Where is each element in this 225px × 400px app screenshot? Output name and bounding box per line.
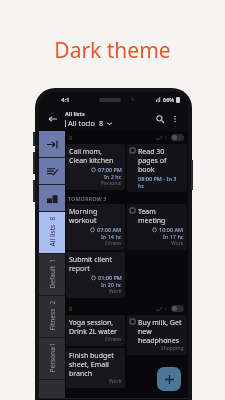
staticText: Dark theme bbox=[54, 36, 171, 65]
staticText: Fitness bbox=[47, 308, 56, 330]
button[interactable]: More options bbox=[168, 112, 182, 126]
button[interactable]: All lists bbox=[39, 212, 65, 254]
button[interactable]: Finish budget sheet, Email branch bbox=[66, 348, 125, 388]
staticText: Yoga session, Drink 2L water bbox=[69, 318, 122, 336]
button[interactable]: Sidebar action bbox=[39, 131, 65, 158]
button[interactable]: Sidebar action bbox=[39, 158, 65, 185]
staticText: Personal bbox=[47, 346, 56, 372]
staticText: 0 bbox=[69, 305, 73, 313]
staticText: Finish budget sheet, Email branch bbox=[69, 351, 122, 378]
staticText: Read 30 pages of book bbox=[138, 147, 184, 174]
staticText: All lists bbox=[47, 224, 56, 246]
button[interactable]: Submit client report bbox=[66, 252, 125, 298]
staticText: Fitness bbox=[105, 240, 122, 247]
button[interactable]: Morning workout bbox=[66, 204, 125, 250]
button[interactable]: Team meeting bbox=[127, 204, 187, 250]
button[interactable]: Add task bbox=[157, 367, 181, 391]
staticText: Submit client report bbox=[69, 255, 122, 273]
button[interactable]: Default bbox=[39, 254, 65, 296]
staticText: 0 bbox=[69, 134, 73, 142]
button[interactable]: Search bbox=[152, 111, 168, 127]
staticText: TOMORROW 3 bbox=[68, 195, 107, 202]
staticText: 4:1 bbox=[61, 96, 70, 104]
staticText: In 17 hr. bbox=[163, 233, 184, 240]
staticText: 66% bbox=[163, 96, 175, 103]
staticText: Shopping bbox=[161, 345, 184, 352]
button[interactable]: Back bbox=[45, 111, 61, 127]
button[interactable]: Read 30 pages of book bbox=[127, 144, 187, 192]
button[interactable]: Toggle completed bbox=[171, 134, 184, 141]
staticText: Work bbox=[171, 240, 184, 247]
staticText: 1 bbox=[164, 305, 168, 312]
staticText: Personal bbox=[101, 180, 122, 187]
staticText: All todo 8 bbox=[68, 118, 104, 128]
staticText: Default bbox=[47, 265, 56, 288]
staticText: In 2 hr. bbox=[104, 173, 122, 180]
staticText: In 14 hr. bbox=[101, 233, 122, 240]
staticText: Buy milk, Get new headphones bbox=[138, 318, 184, 345]
staticText: 10:00 AM bbox=[159, 226, 184, 233]
staticText: Work bbox=[109, 378, 122, 385]
staticText: All lists bbox=[65, 110, 85, 117]
staticText: Team meeting bbox=[138, 207, 184, 225]
staticText: 01:00 PM bbox=[98, 274, 122, 281]
staticText: Morning workout bbox=[69, 207, 122, 225]
button[interactable]: Buy milk, Get new headphones bbox=[127, 315, 187, 355]
staticText: Fitness bbox=[105, 336, 122, 343]
staticText: 07:00 PM bbox=[98, 166, 122, 173]
button[interactable]: Sidebar action bbox=[39, 185, 65, 212]
staticText: In 20 hr. bbox=[101, 281, 122, 288]
button[interactable]: Personal bbox=[39, 338, 65, 380]
staticText: 08:00 PM - In 3 hr. bbox=[138, 175, 184, 189]
staticText: Work bbox=[109, 288, 122, 295]
button[interactable]: Yoga session, Drink 2L water bbox=[66, 315, 125, 346]
staticText: Call mom, Clean kitchen bbox=[69, 147, 122, 165]
staticText: 1 bbox=[164, 134, 168, 141]
button[interactable]: Call mom, Clean kitchen bbox=[66, 144, 125, 190]
button[interactable]: All lists bbox=[65, 110, 152, 128]
button[interactable]: Toggle completed bbox=[171, 305, 184, 312]
button[interactable]: Fitness bbox=[39, 296, 65, 338]
staticText: 07:00 AM bbox=[97, 226, 122, 233]
